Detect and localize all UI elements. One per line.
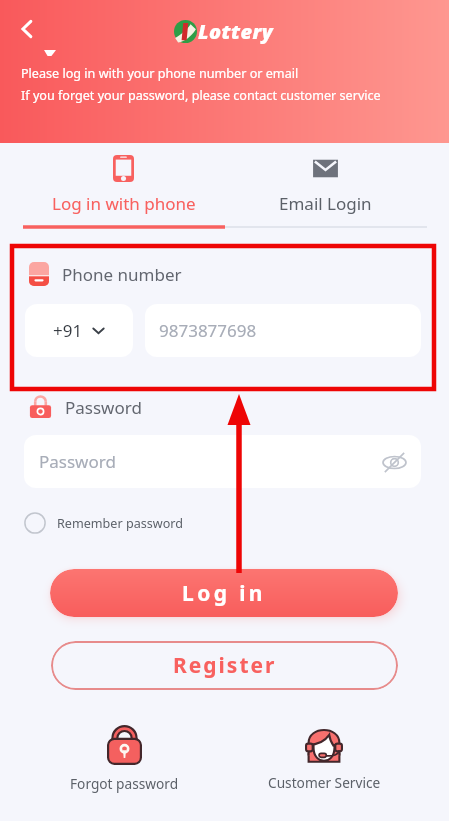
staticText: If you forget your password, please cont… <box>21 87 381 104</box>
staticText: Customer Service <box>268 773 381 792</box>
staticText: Remember password <box>57 515 184 532</box>
staticText: Log in with phone <box>52 192 196 215</box>
button[interactable]: +91 <box>25 304 133 357</box>
staticText: Register <box>173 651 277 680</box>
button[interactable]: Log in <box>50 569 398 617</box>
staticText: Phone number <box>62 263 182 286</box>
button[interactable]: Remember password <box>24 512 184 534</box>
staticText: 9873877698 <box>159 319 257 342</box>
button[interactable]: Password <box>24 435 421 488</box>
staticText: Password <box>39 450 116 473</box>
button[interactable]: Back <box>6 8 48 50</box>
button[interactable]: Forgot password <box>54 725 194 793</box>
staticText: Forgot password <box>70 774 179 793</box>
staticText: Lottery <box>198 18 273 45</box>
button[interactable]: Log in with phone <box>23 143 224 215</box>
button[interactable]: Register <box>51 641 398 690</box>
button[interactable]: Email Login <box>224 143 426 215</box>
button[interactable]: Customer Service <box>254 725 394 792</box>
button[interactable]: 9873877698 <box>145 304 421 357</box>
staticText: +91 <box>53 319 83 342</box>
staticText: Please log in with your phone number or … <box>21 65 299 82</box>
staticText: Password <box>65 396 142 419</box>
button[interactable]: Show password <box>379 447 409 477</box>
staticText: Email Login <box>279 192 372 215</box>
staticText: Log in <box>182 579 266 608</box>
